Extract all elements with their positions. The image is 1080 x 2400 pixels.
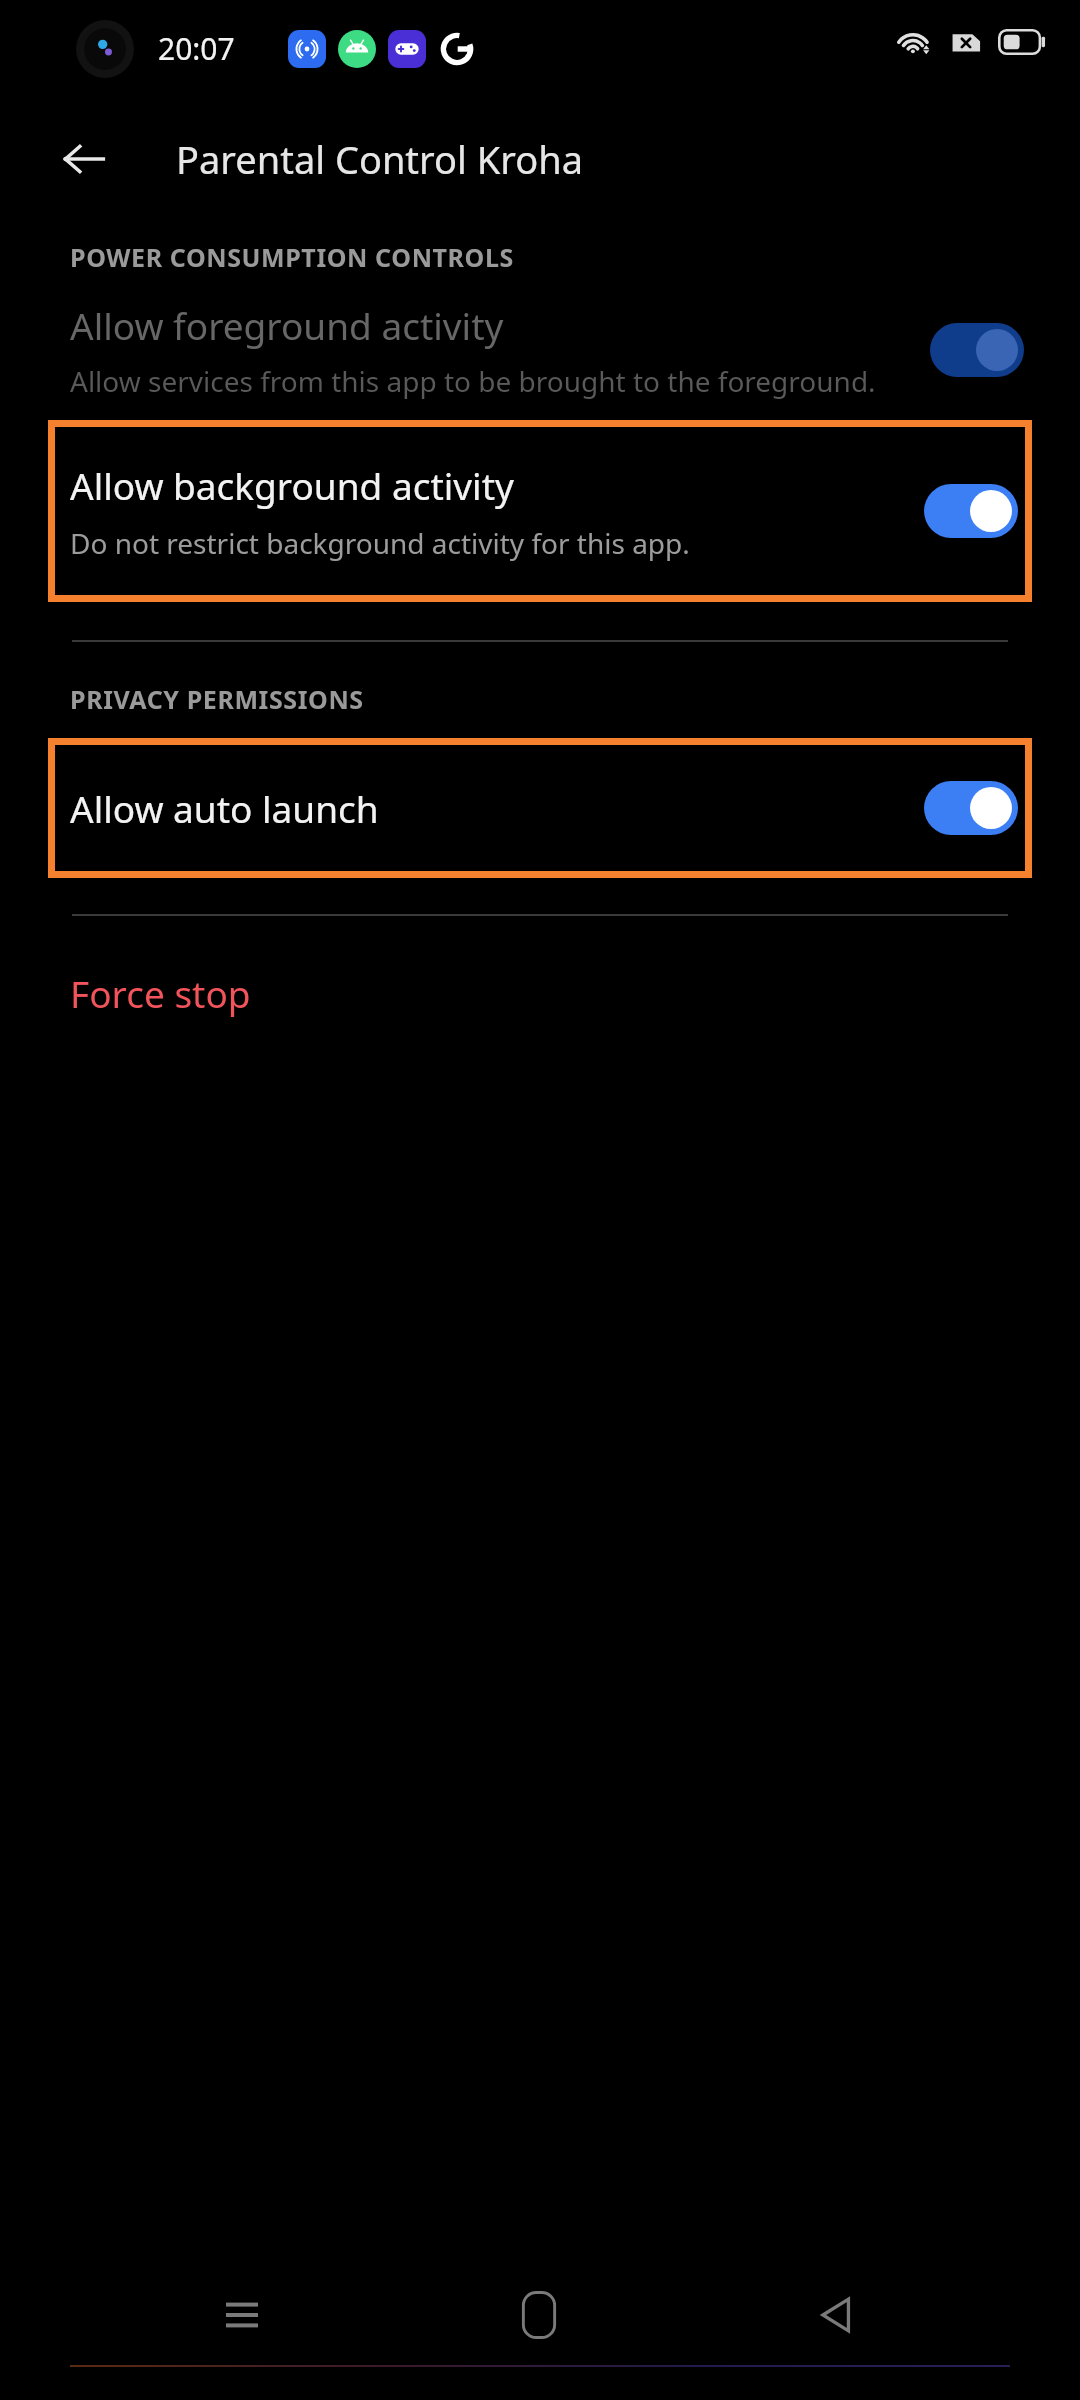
button[interactable]: Home <box>484 2260 594 2370</box>
staticText: Force stop <box>70 968 251 1018</box>
button[interactable]: Back <box>782 2260 892 2370</box>
button[interactable]: Allow foreground activity <box>0 300 1080 400</box>
staticText: POWER CONSUMPTION CONTROLS <box>70 240 514 274</box>
staticText: 20:07 <box>158 28 235 69</box>
staticText: Allow services from this app to be broug… <box>70 362 876 400</box>
staticText: Allow auto launch <box>70 783 908 833</box>
staticText: Parental Control Kroha <box>176 133 583 185</box>
button[interactable]: Back <box>48 123 120 195</box>
button[interactable]: Allow auto launch <box>48 738 1032 878</box>
button[interactable]: Force stop <box>0 962 1080 1024</box>
staticText: Allow background activity <box>70 460 514 510</box>
button[interactable]: Recents <box>187 2260 297 2370</box>
staticText: Do not restrict background activity for … <box>70 524 690 562</box>
staticText: PRIVACY PERMISSIONS <box>70 682 364 716</box>
staticText: Allow foreground activity <box>70 300 504 350</box>
button[interactable]: Allow background activity <box>48 420 1032 602</box>
